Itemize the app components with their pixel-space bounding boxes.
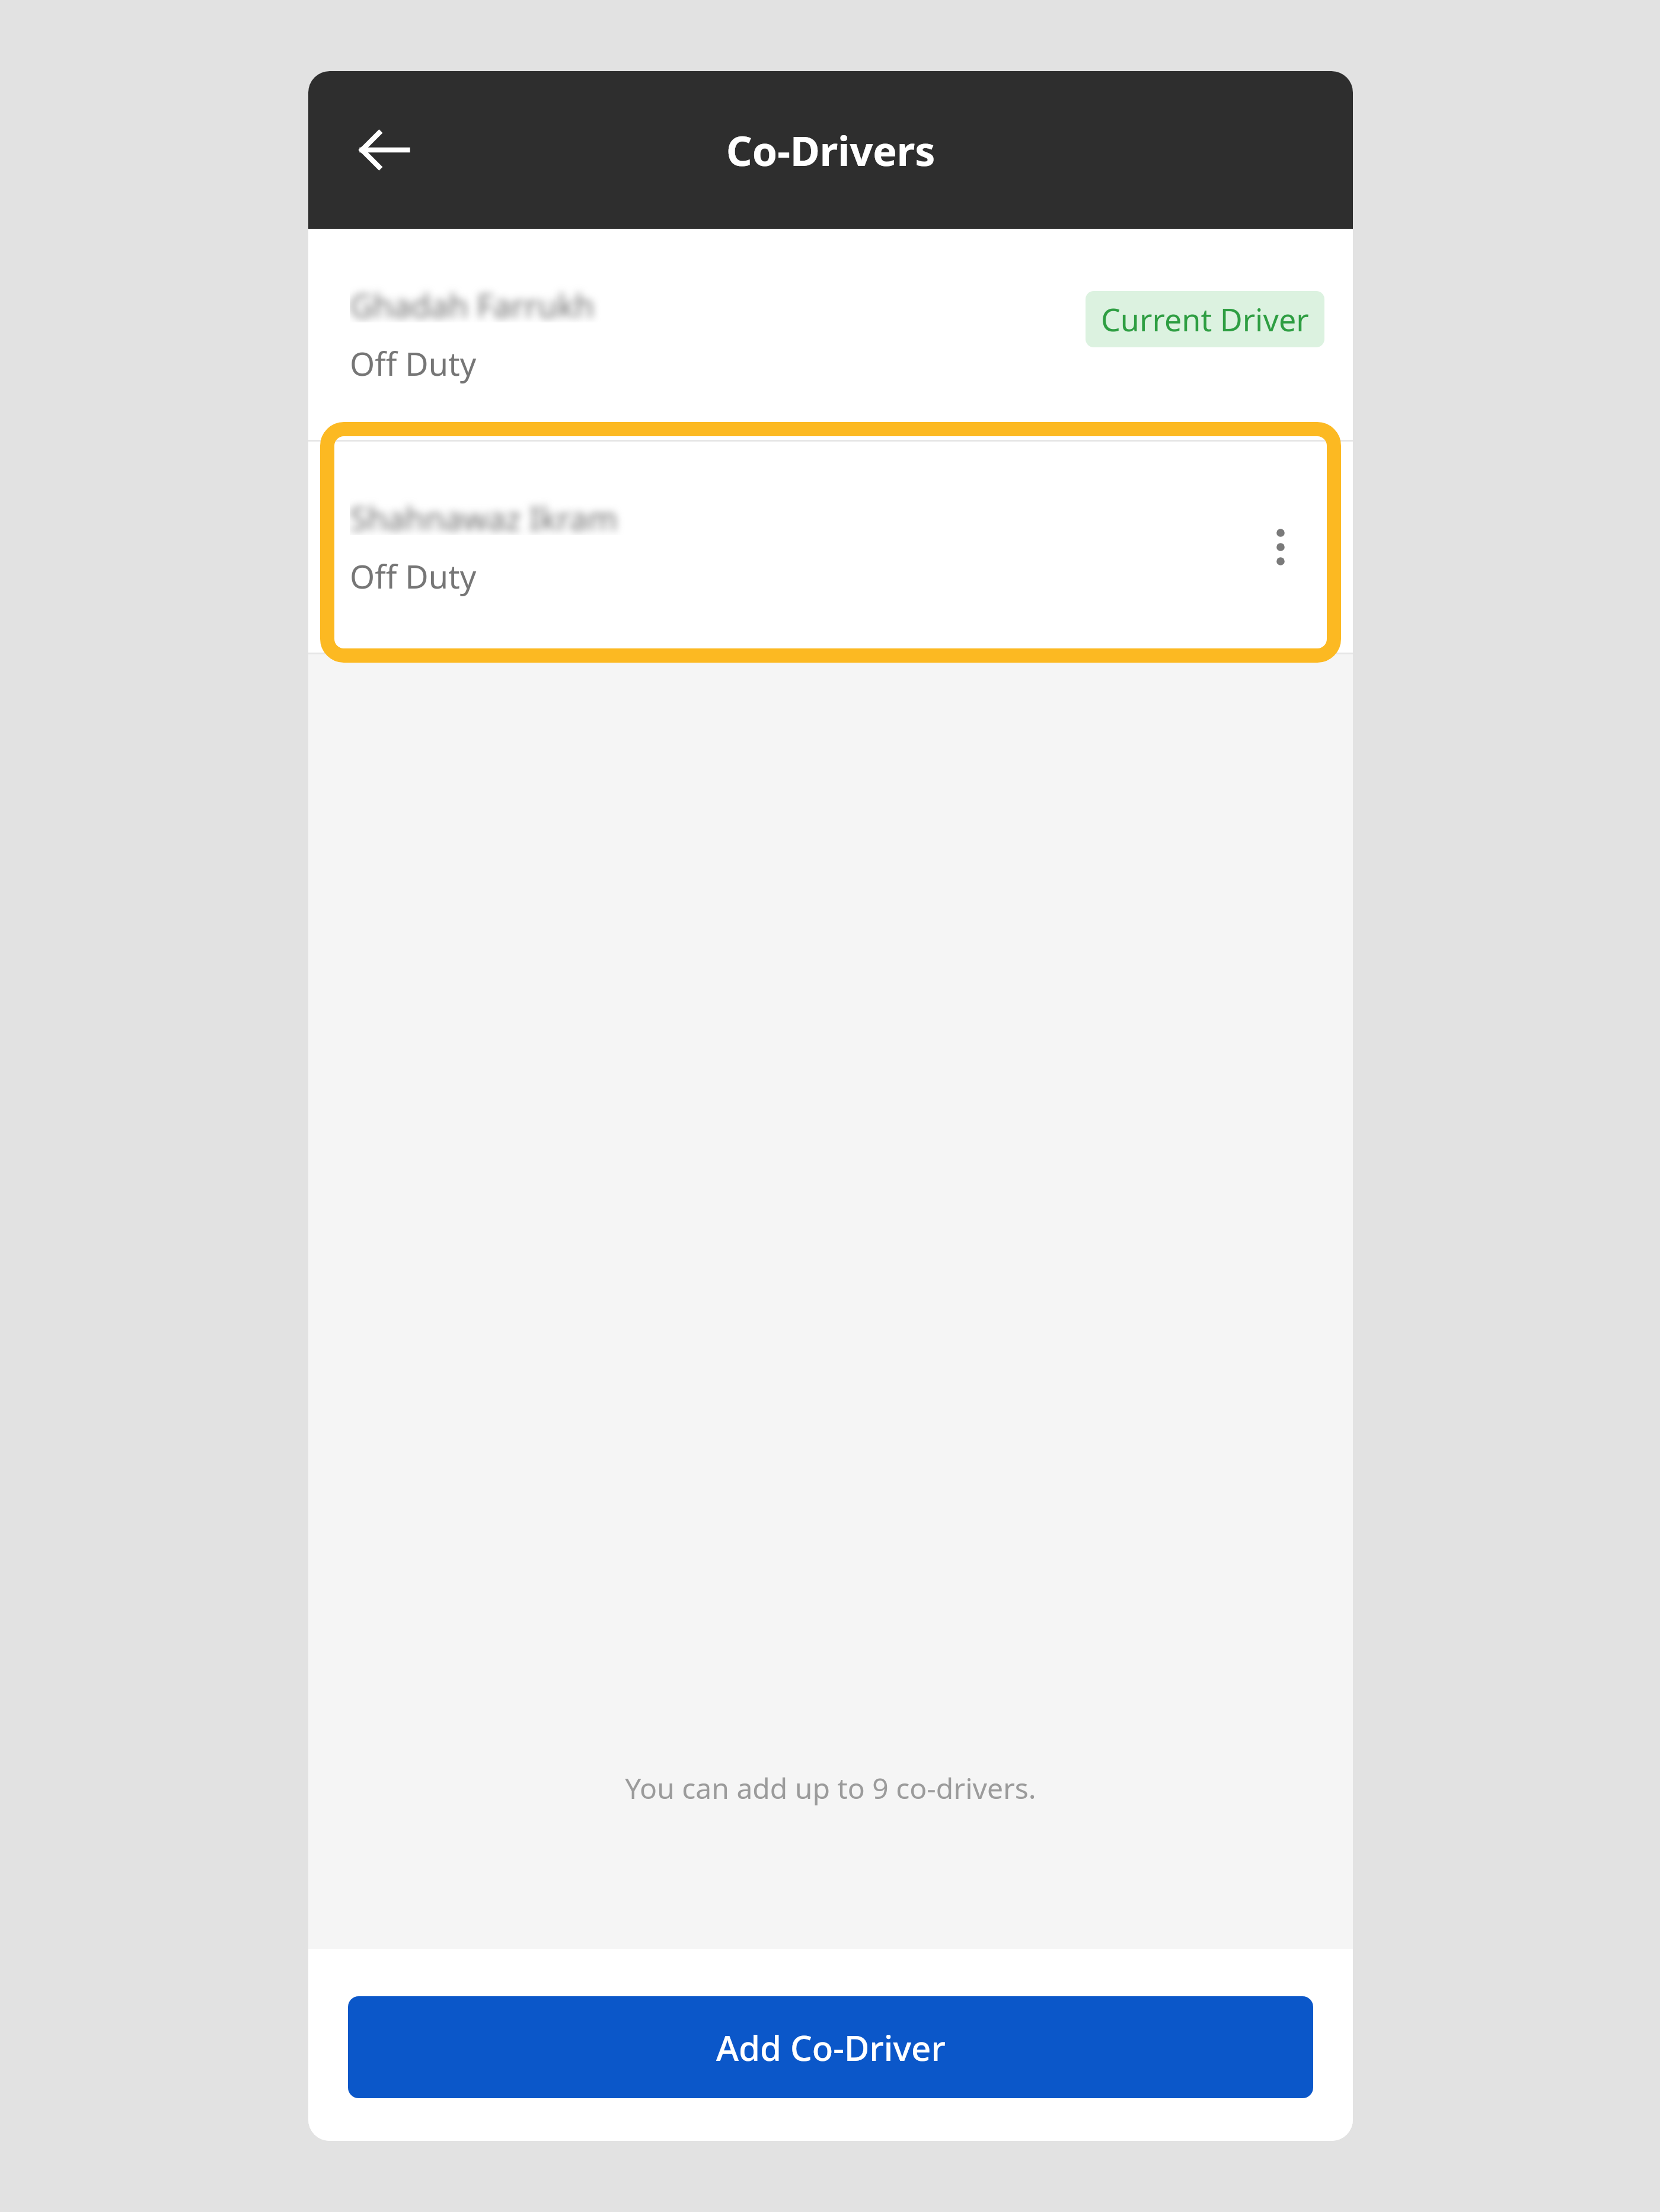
staticText: Add Co-Driver: [716, 2024, 946, 2071]
button[interactable]: Back: [340, 106, 429, 194]
button[interactable]: More options: [1239, 506, 1322, 589]
staticText: Off Duty: [350, 341, 477, 385]
button[interactable]: Add Co-Driver: [348, 1996, 1313, 2098]
staticText: Ghadah Farrukh: [350, 283, 595, 322]
staticText: Shahnawaz Ikram: [350, 496, 618, 535]
staticText: Current Driver: [1101, 298, 1309, 340]
button[interactable]: Ghadah Farrukh: [308, 229, 1353, 440]
staticText: You can add up to 9 co-drivers.: [308, 1769, 1353, 1807]
staticText: Co-Drivers: [726, 123, 936, 178]
button[interactable]: Shahnawaz Ikram: [308, 442, 1353, 653]
button[interactable]: Current Driver: [1086, 291, 1324, 347]
staticText: Off Duty: [350, 554, 477, 598]
